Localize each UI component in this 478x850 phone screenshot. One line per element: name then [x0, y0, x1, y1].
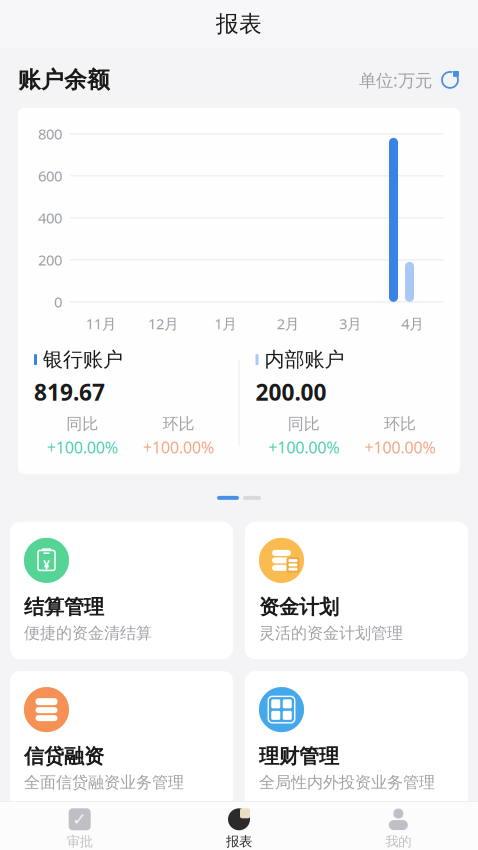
staticText: 我的	[385, 833, 411, 850]
button[interactable]: ¥	[10, 522, 233, 659]
staticText: 审批	[67, 833, 93, 850]
staticText: 资金计划	[259, 595, 339, 619]
button[interactable]: 资金计划	[245, 522, 468, 659]
staticText: 环比	[162, 414, 194, 434]
staticText: +100.00%	[143, 437, 214, 458]
button[interactable]: 我的	[319, 802, 478, 850]
staticText: ✓	[72, 809, 87, 829]
staticText: 600	[38, 166, 62, 186]
button[interactable]: 理财管理	[245, 671, 468, 808]
staticText: +100.00%	[47, 437, 118, 458]
button[interactable]: ✓	[0, 802, 159, 850]
staticText: 全面信贷融资业务管理	[24, 773, 184, 792]
staticText: 4月	[401, 314, 424, 333]
staticText: 400	[38, 208, 62, 228]
staticText: 200	[38, 250, 62, 270]
staticText: 同比	[66, 414, 98, 434]
staticText: 内部账户	[264, 347, 344, 372]
button[interactable]: 刷新	[432, 70, 460, 90]
button[interactable]: 报表	[159, 802, 319, 850]
staticText: 12月	[148, 314, 179, 333]
staticText: 结算管理	[24, 595, 104, 619]
staticText: +100.00%	[268, 437, 339, 458]
staticText: 便捷的资金清结算	[24, 623, 152, 643]
staticText: 3月	[339, 314, 362, 333]
staticText: 11月	[86, 314, 117, 333]
staticText: 报表	[216, 10, 262, 38]
staticText: 单位:万元	[359, 68, 432, 91]
staticText: 0	[54, 292, 62, 312]
staticText: 2月	[277, 314, 300, 333]
staticText: 账户余额	[18, 66, 110, 94]
staticText: 200.00	[255, 377, 326, 407]
button[interactable]: 信贷融资	[10, 671, 233, 808]
staticText: 银行账户	[43, 347, 123, 372]
staticText: 1月	[214, 314, 237, 333]
staticText: 灵活的资金计划管理	[259, 623, 403, 643]
staticText: 800	[38, 124, 62, 144]
staticText: 理财管理	[259, 744, 339, 769]
staticText: 报表	[226, 833, 252, 850]
staticText: 819.67	[34, 377, 105, 407]
staticText: +100.00%	[364, 437, 435, 458]
staticText: 信贷融资	[24, 744, 104, 769]
staticText: 全局性内外投资业务管理	[259, 773, 435, 792]
staticText: 环比	[384, 414, 416, 434]
staticText: ¥	[43, 556, 50, 572]
staticText: 同比	[288, 414, 320, 434]
